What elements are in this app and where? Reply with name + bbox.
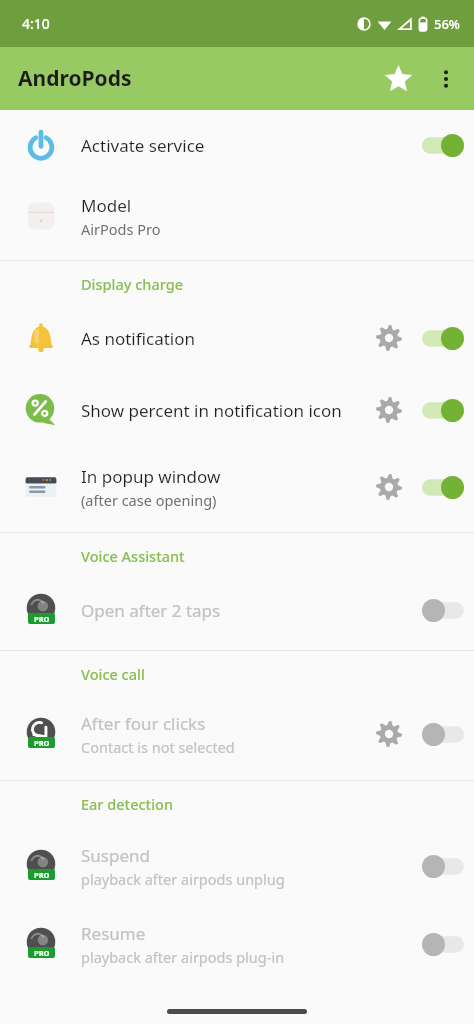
button[interactable]: In popup window (0, 451, 474, 523)
staticText: PRO (34, 948, 50, 958)
button[interactable]: Settings (366, 387, 412, 433)
button[interactable]: Toggle Resume (412, 920, 474, 968)
staticText: PRO (34, 738, 50, 748)
staticText: playback after airpods unplug (81, 869, 285, 889)
staticText: 4:10 (22, 14, 50, 33)
button[interactable]: Show percent in notification icon (0, 369, 474, 451)
staticText: Voice Assistant (81, 546, 185, 566)
staticText: (after case opening) (81, 490, 217, 510)
staticText: AirPods Pro (81, 219, 161, 239)
staticText: Resume (81, 922, 146, 945)
staticText: PRO (34, 614, 50, 624)
staticText: Display charge (81, 274, 183, 294)
button[interactable]: Settings (366, 464, 412, 510)
button[interactable]: More options (422, 55, 470, 103)
button[interactable]: PRO (0, 579, 474, 641)
button[interactable]: PRO (0, 905, 474, 983)
staticText: Contact is not selected (81, 737, 235, 757)
button[interactable]: PRO (0, 827, 474, 905)
button[interactable]: Toggle Open after 2 taps (412, 586, 474, 634)
button[interactable]: Toggle After four clicks (412, 710, 474, 758)
staticText: 56% (434, 15, 460, 33)
staticText: Model (81, 194, 132, 217)
button[interactable]: Favorite (374, 55, 422, 103)
button[interactable]: Toggle In popup window (412, 463, 474, 511)
button[interactable]: PRO (0, 697, 474, 771)
button[interactable]: Activate service (0, 110, 474, 180)
staticText: Voice call (81, 664, 145, 684)
staticText: After four clicks (81, 712, 206, 735)
staticText: In popup window (81, 465, 221, 488)
button[interactable]: Toggle Activate service (412, 121, 474, 169)
staticText: Show percent in notification icon (81, 399, 342, 422)
button[interactable]: Model (0, 180, 474, 252)
button[interactable]: Settings (366, 711, 412, 757)
staticText: AndroPods (18, 64, 132, 93)
button[interactable]: Toggle Suspend (412, 842, 474, 890)
staticText: Open after 2 taps (81, 599, 221, 622)
staticText: As notification (81, 327, 195, 350)
staticText: Activate service (81, 134, 205, 157)
staticText: Suspend (81, 844, 150, 867)
staticText: Ear detection (81, 794, 174, 814)
button[interactable]: Toggle Show percent in notification icon (412, 386, 474, 434)
button[interactable]: Settings (366, 315, 412, 361)
button[interactable]: As notification (0, 307, 474, 369)
staticText: playback after airpods plug-in (81, 947, 285, 967)
staticText: PRO (34, 870, 50, 880)
button[interactable]: Toggle As notification (412, 314, 474, 362)
